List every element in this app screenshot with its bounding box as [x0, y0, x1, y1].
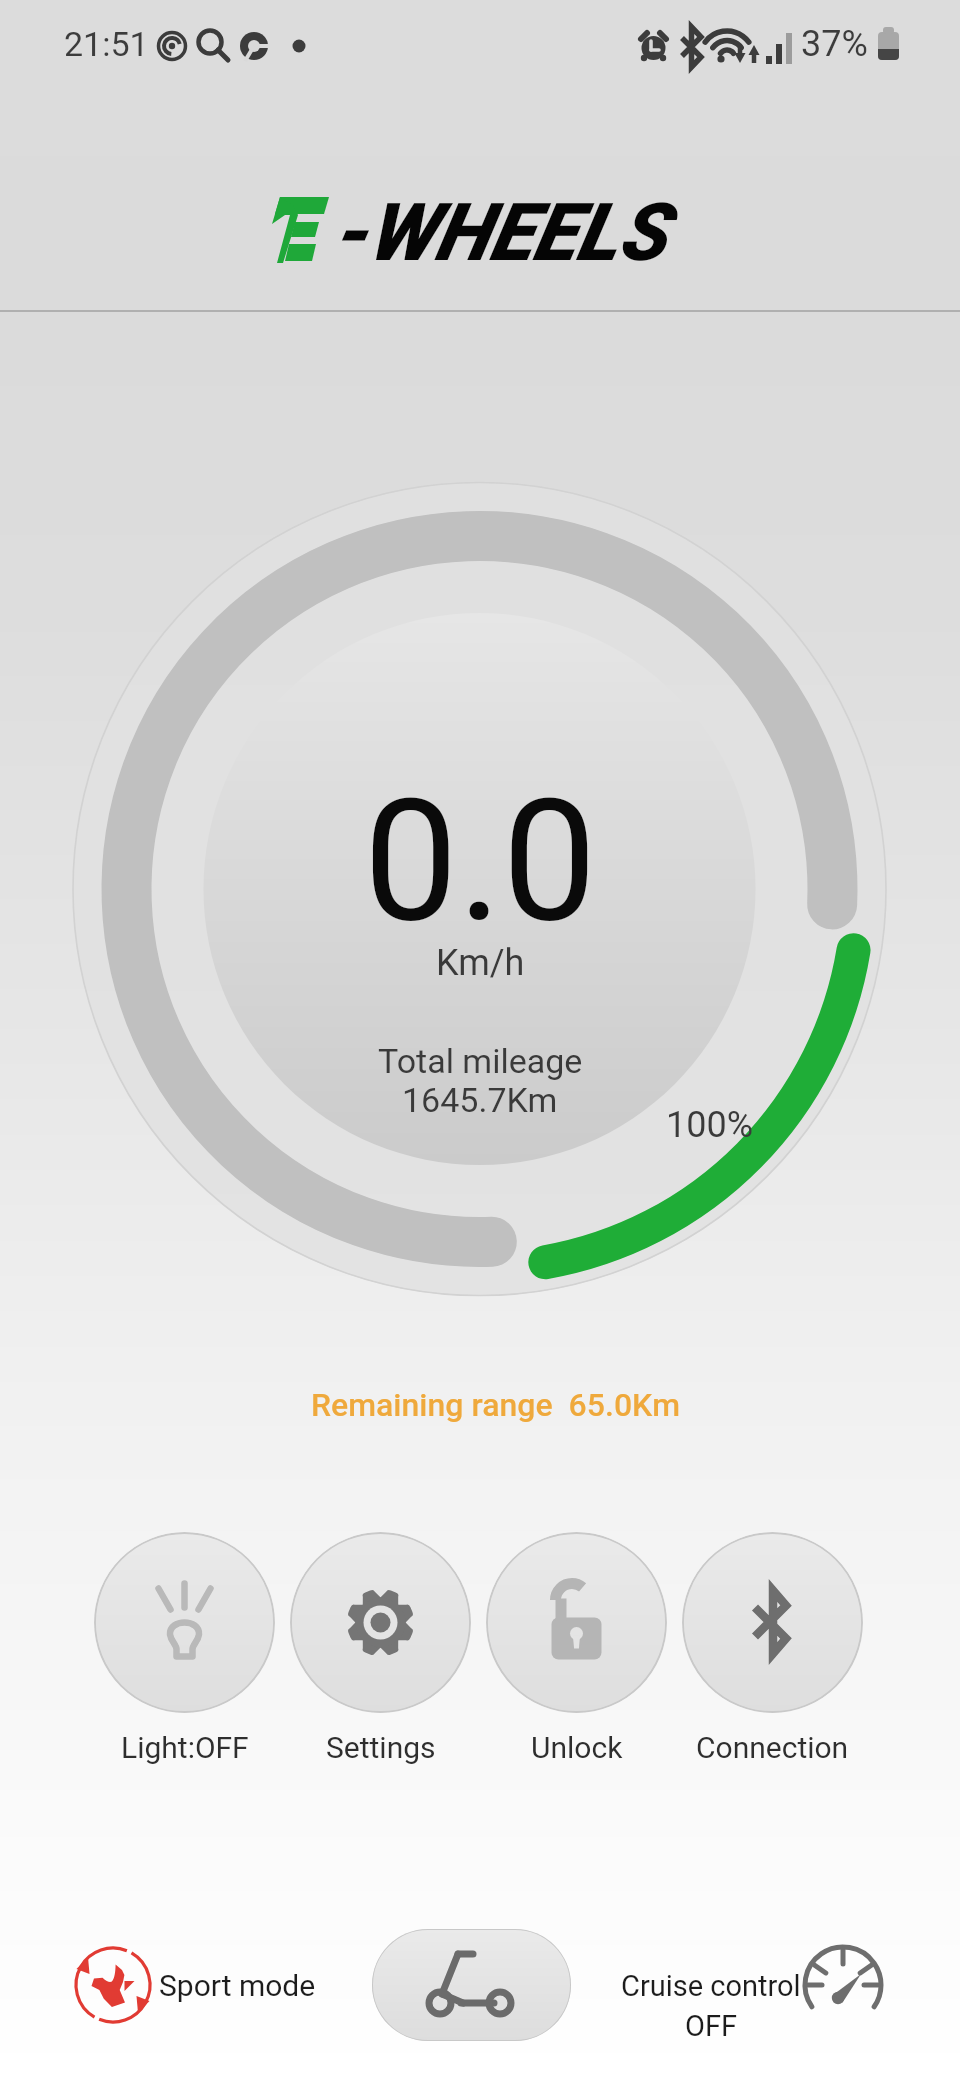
staticText: Settings: [326, 1730, 436, 1765]
staticText: OFF: [685, 2009, 738, 2043]
button[interactable]: Connection: [682, 1532, 863, 1713]
staticText: 1645.7Km: [402, 1080, 558, 1120]
staticText: 0.0: [363, 763, 597, 960]
staticText: Light:OFF: [121, 1730, 249, 1765]
staticText: 21:51: [64, 24, 149, 64]
staticText: Unlock: [531, 1730, 623, 1765]
staticText: 100%: [666, 1104, 754, 1146]
button[interactable]: Sport mode: [73, 1945, 316, 2025]
staticText: 37%: [801, 23, 868, 65]
staticText: Total mileage: [378, 1041, 583, 1081]
button[interactable]: Scooter mode: [372, 1929, 571, 2041]
button[interactable]: Cruise control: [618, 1940, 888, 2048]
button[interactable]: Unlock: [486, 1532, 667, 1713]
staticText: Sport mode: [159, 1968, 316, 2003]
staticText: Km/h: [436, 942, 525, 984]
button[interactable]: Settings: [290, 1532, 471, 1713]
staticText: Remaining range 65.0Km: [311, 1386, 681, 1424]
staticText: Cruise control: [621, 1969, 801, 2003]
staticText: Connection: [696, 1730, 849, 1765]
button[interactable]: Light:OFF: [94, 1532, 275, 1713]
staticText: -WHEELS: [332, 186, 667, 280]
